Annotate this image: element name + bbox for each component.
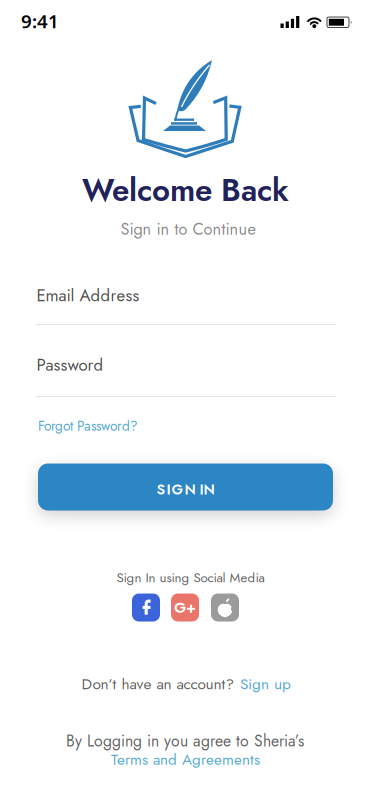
staticText: 9:41 [21,9,59,33]
button[interactable]: Sign in with Google [171,593,199,621]
staticText: By Logging in you agree to Sheria’s [66,730,304,752]
staticText: Sign up [240,673,291,695]
button[interactable]: Terms and Agreements [111,748,260,770]
staticText: Email Address [36,283,139,308]
staticText: G+ [174,596,196,619]
button[interactable]: Forgot Password? [38,416,138,436]
staticText: Forgot Password? [38,416,138,436]
staticText: Terms and Agreements [111,748,260,770]
button[interactable]: Sign in with Apple [211,593,239,621]
staticText: S I G N IN [156,479,214,500]
staticText: Welcome Back [82,167,289,213]
staticText: Sign in to Continue [120,217,255,241]
button[interactable]: S I G N IN [38,463,333,510]
button[interactable]: Sign up [240,673,291,695]
button[interactable]: Sign in with Facebook [132,593,160,621]
staticText: Sign In using Social Media [116,568,264,587]
staticText: Password [36,353,103,377]
staticText: Don’t have an account? [81,673,234,695]
